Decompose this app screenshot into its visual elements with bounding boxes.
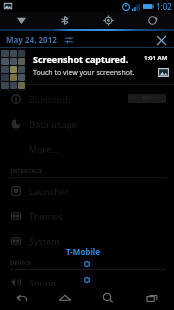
button[interactable]: Location bbox=[86, 12, 130, 29]
button[interactable]: System bbox=[0, 228, 174, 253]
button[interactable]: Bluetooth bbox=[43, 12, 86, 29]
staticText: System bbox=[29, 235, 60, 247]
staticText: Sound bbox=[29, 277, 57, 289]
staticText: DEVICE bbox=[10, 259, 32, 267]
staticText: Screenshot captured. bbox=[33, 53, 129, 65]
staticText: 1:01 AM bbox=[144, 54, 168, 62]
button[interactable]: Rotation bbox=[130, 12, 174, 29]
staticText: Themes bbox=[29, 210, 63, 222]
button[interactable]: Data usage bbox=[0, 111, 174, 136]
button[interactable]: Launcher bbox=[0, 178, 174, 203]
staticText: INTERFACE bbox=[10, 167, 43, 175]
staticText: More... bbox=[29, 143, 59, 155]
staticText: Touch to view your screenshot. bbox=[33, 68, 135, 78]
button[interactable]: Sound bbox=[0, 270, 174, 295]
staticText: Bluetooth bbox=[29, 93, 71, 105]
button[interactable]: Display bbox=[0, 295, 174, 310]
staticText: Data usage bbox=[29, 118, 77, 130]
button[interactable]: Clear all notifications bbox=[154, 33, 168, 47]
staticText: T-Mobile bbox=[66, 246, 101, 257]
staticText: May 24, 2012 bbox=[6, 34, 57, 45]
button[interactable]: Recent apps bbox=[130, 286, 174, 310]
button[interactable]: Bluetooth bbox=[0, 86, 174, 111]
button[interactable]: Search bbox=[86, 286, 130, 310]
button[interactable]: Settings bbox=[63, 34, 75, 46]
button[interactable]: Back bbox=[0, 286, 43, 310]
button[interactable]: Home bbox=[43, 286, 86, 310]
button[interactable]: Themes bbox=[0, 203, 174, 228]
staticText: Launcher bbox=[29, 185, 69, 197]
staticText: 1:02 bbox=[156, 1, 172, 12]
staticText: OFF bbox=[142, 95, 152, 102]
button[interactable]: Wi-Fi bbox=[0, 12, 43, 29]
button[interactable]: Screenshot captured. bbox=[26, 49, 174, 85]
